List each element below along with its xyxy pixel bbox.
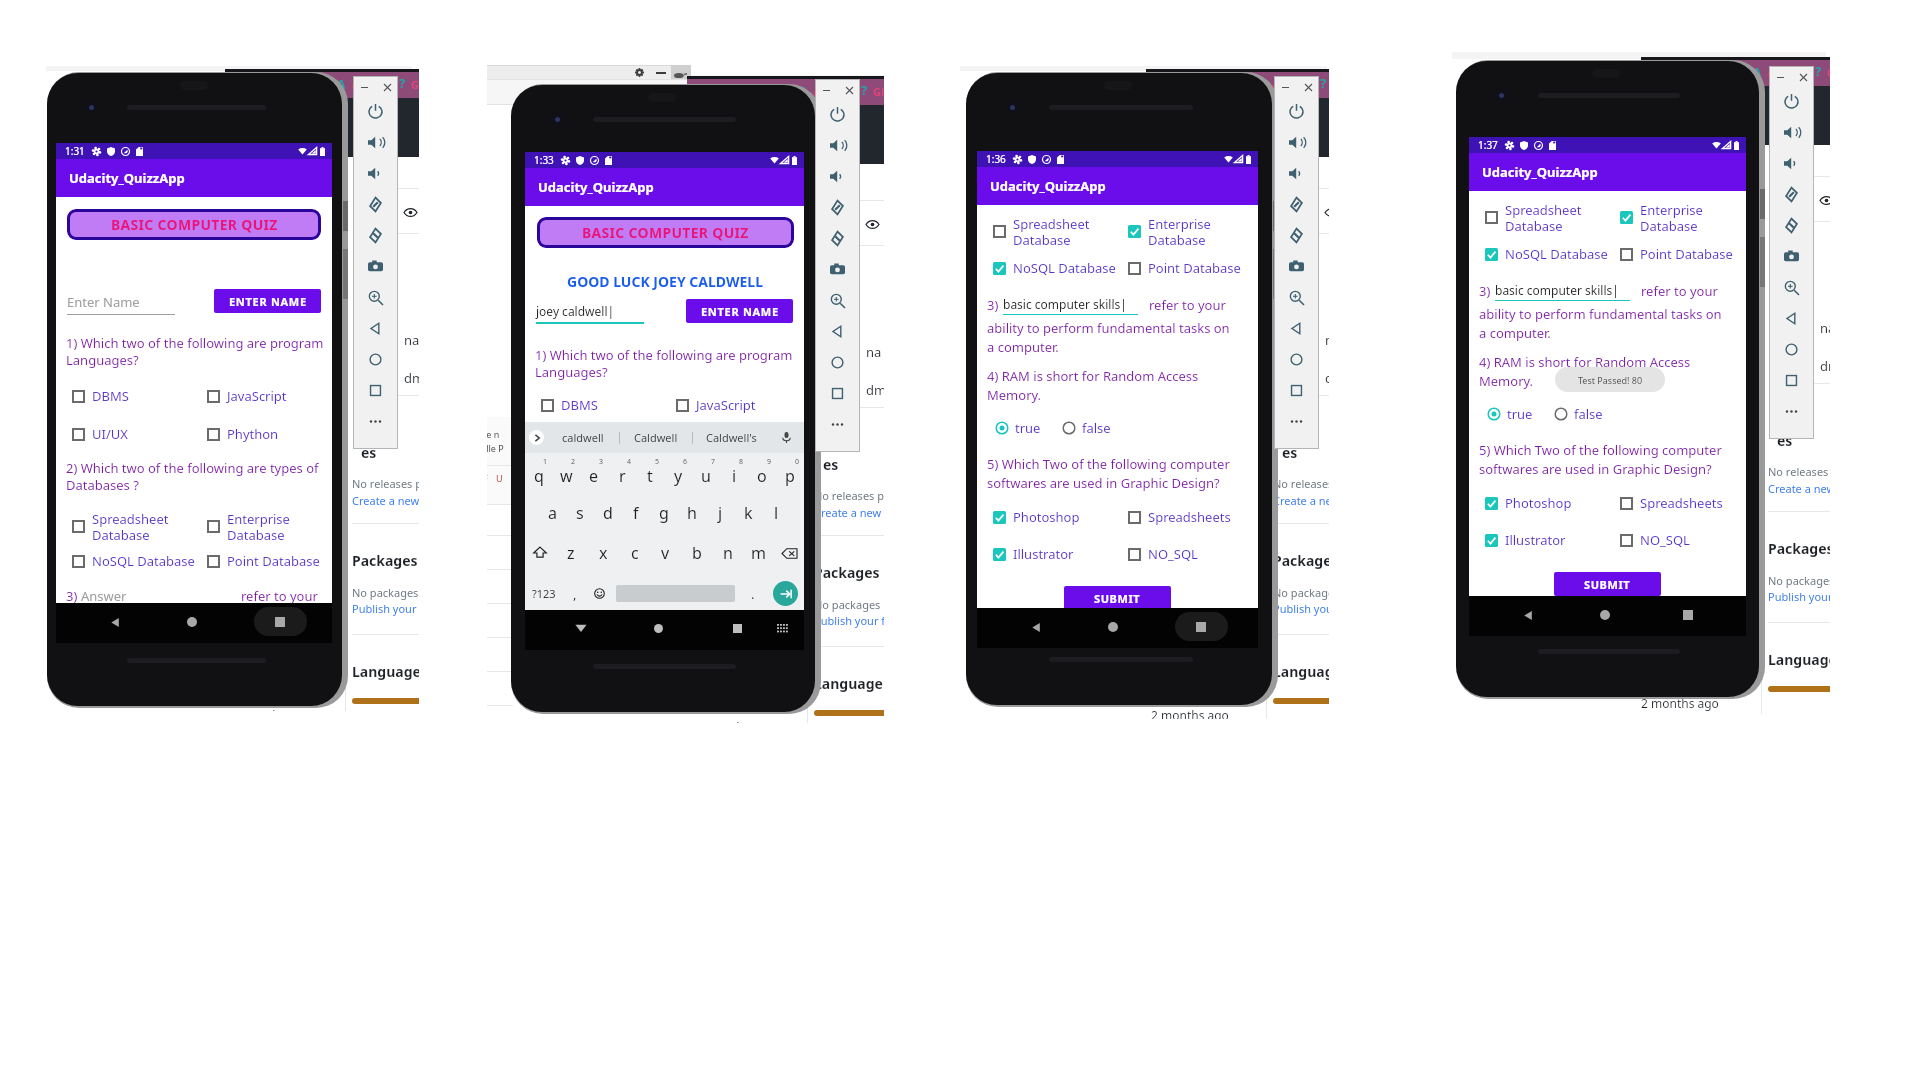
button[interactable]: Caldwell's xyxy=(693,430,769,445)
button[interactable]: g xyxy=(650,493,678,533)
button[interactable]: Back xyxy=(822,316,853,347)
button[interactable]: Spreadsheet Database xyxy=(72,510,207,543)
button[interactable]: DBMS xyxy=(541,396,676,414)
button[interactable]: Volume up xyxy=(1776,117,1807,148)
button[interactable]: l xyxy=(762,493,790,533)
button[interactable]: Photoshop xyxy=(1485,494,1620,512)
button[interactable]: true xyxy=(1487,405,1533,423)
button[interactable]: Back xyxy=(1281,313,1312,344)
button[interactable]: Home xyxy=(1600,610,1610,620)
button[interactable]: Recents xyxy=(1281,375,1312,406)
button[interactable]: Close xyxy=(1796,70,1810,84)
button[interactable]: 8 xyxy=(720,453,748,493)
button[interactable]: z xyxy=(555,533,587,573)
button[interactable]: 3 xyxy=(580,453,608,493)
button[interactable]: h xyxy=(678,493,706,533)
button[interactable]: NO_SQL xyxy=(1128,545,1198,563)
button[interactable]: Power xyxy=(360,96,391,127)
button[interactable]: Zoom xyxy=(1776,272,1807,303)
button[interactable]: Close xyxy=(842,83,856,97)
button[interactable]: Power xyxy=(822,99,853,130)
button[interactable]: More xyxy=(1776,396,1807,427)
button[interactable]: Home xyxy=(187,617,197,627)
button[interactable]: Point Database xyxy=(1620,245,1733,263)
button[interactable]: Illustrator xyxy=(993,545,1128,563)
button[interactable]: 6 xyxy=(664,453,692,493)
button[interactable]: 9 xyxy=(748,453,776,493)
button[interactable]: Rotate left xyxy=(822,192,853,223)
button[interactable]: Zoom xyxy=(1281,282,1312,313)
button[interactable]: NoSQL Database xyxy=(72,552,207,570)
button[interactable]: Home xyxy=(1281,344,1312,375)
button[interactable]: Back xyxy=(1776,303,1807,334)
button[interactable]: false xyxy=(1062,419,1111,437)
button[interactable]: Rotate left xyxy=(1776,179,1807,210)
button[interactable]: s xyxy=(566,493,594,533)
button[interactable]: ENTER NAME xyxy=(214,289,321,313)
button[interactable]: k xyxy=(734,493,762,533)
button[interactable]: true xyxy=(995,419,1041,437)
button[interactable]: Rotate right xyxy=(1776,210,1807,241)
button[interactable]: Recents xyxy=(254,607,307,636)
button[interactable]: n xyxy=(712,533,743,573)
button[interactable]: Phython xyxy=(207,425,279,443)
button[interactable]: Volume down xyxy=(822,161,853,192)
button[interactable]: Volume up xyxy=(360,127,391,158)
button[interactable]: More xyxy=(360,406,391,437)
button[interactable]: Hide keyboard xyxy=(573,620,589,636)
button[interactable]: Close xyxy=(1301,80,1315,94)
button[interactable]: Zoom xyxy=(360,282,391,313)
button[interactable]: Volume down xyxy=(1776,148,1807,179)
button[interactable]: DBMS xyxy=(72,387,207,405)
button[interactable]: Volume down xyxy=(1281,158,1312,189)
button[interactable]: Minimize xyxy=(357,80,371,94)
button[interactable]: 4 xyxy=(608,453,636,493)
button[interactable]: Recents xyxy=(360,375,391,406)
button[interactable]: j xyxy=(706,493,734,533)
button[interactable]: Back xyxy=(108,615,123,630)
button[interactable]: UI/UX xyxy=(72,425,207,443)
button[interactable]: , xyxy=(563,573,587,614)
button[interactable]: Enterprise Database xyxy=(207,510,290,543)
button[interactable]: c xyxy=(619,533,650,573)
button[interactable]: Screenshot xyxy=(360,251,391,282)
button[interactable]: Enterprise Database xyxy=(1620,201,1703,234)
button[interactable]: Enterprise Database xyxy=(1128,215,1211,248)
button[interactable]: false xyxy=(1554,405,1603,423)
button[interactable]: JavaScript xyxy=(676,396,756,414)
button[interactable]: Zoom xyxy=(822,285,853,316)
button[interactable]: Power xyxy=(1776,86,1807,117)
button[interactable]: Home xyxy=(654,624,663,633)
button[interactable]: 1 xyxy=(525,453,552,493)
button[interactable]: JavaScript xyxy=(207,387,287,405)
button[interactable]: Home xyxy=(822,347,853,378)
button[interactable]: Recents xyxy=(1776,365,1807,396)
button[interactable]: Rotate right xyxy=(822,223,853,254)
button[interactable]: 2 xyxy=(552,453,580,493)
button[interactable]: SUBMIT xyxy=(1554,572,1661,596)
button[interactable]: Enter xyxy=(773,581,798,606)
button[interactable]: Volume down xyxy=(360,158,391,189)
button[interactable]: Close xyxy=(380,80,394,94)
button[interactable]: Spreadsheet Database xyxy=(993,215,1128,248)
button[interactable]: Screenshot xyxy=(822,254,853,285)
button[interactable]: Spreadsheets xyxy=(1128,508,1231,526)
button[interactable]: BASIC COMPUTER QUIZ xyxy=(67,209,321,240)
button[interactable]: Minimize xyxy=(819,83,833,97)
button[interactable]: Power xyxy=(1281,96,1312,127)
button[interactable]: Switch keyboard xyxy=(777,623,788,634)
button[interactable]: Home xyxy=(360,344,391,375)
button[interactable]: Point Database xyxy=(1128,259,1241,277)
button[interactable]: 7 xyxy=(692,453,720,493)
button[interactable]: More xyxy=(1281,406,1312,437)
button[interactable]: ENTER NAME xyxy=(686,299,793,323)
button[interactable]: Volume up xyxy=(1281,127,1312,158)
button[interactable]: Rotate right xyxy=(360,220,391,251)
button[interactable]: 5 xyxy=(636,453,664,493)
button[interactable]: . xyxy=(740,573,766,614)
button[interactable]: Back xyxy=(1521,608,1536,623)
button[interactable]: Back xyxy=(1029,620,1044,635)
